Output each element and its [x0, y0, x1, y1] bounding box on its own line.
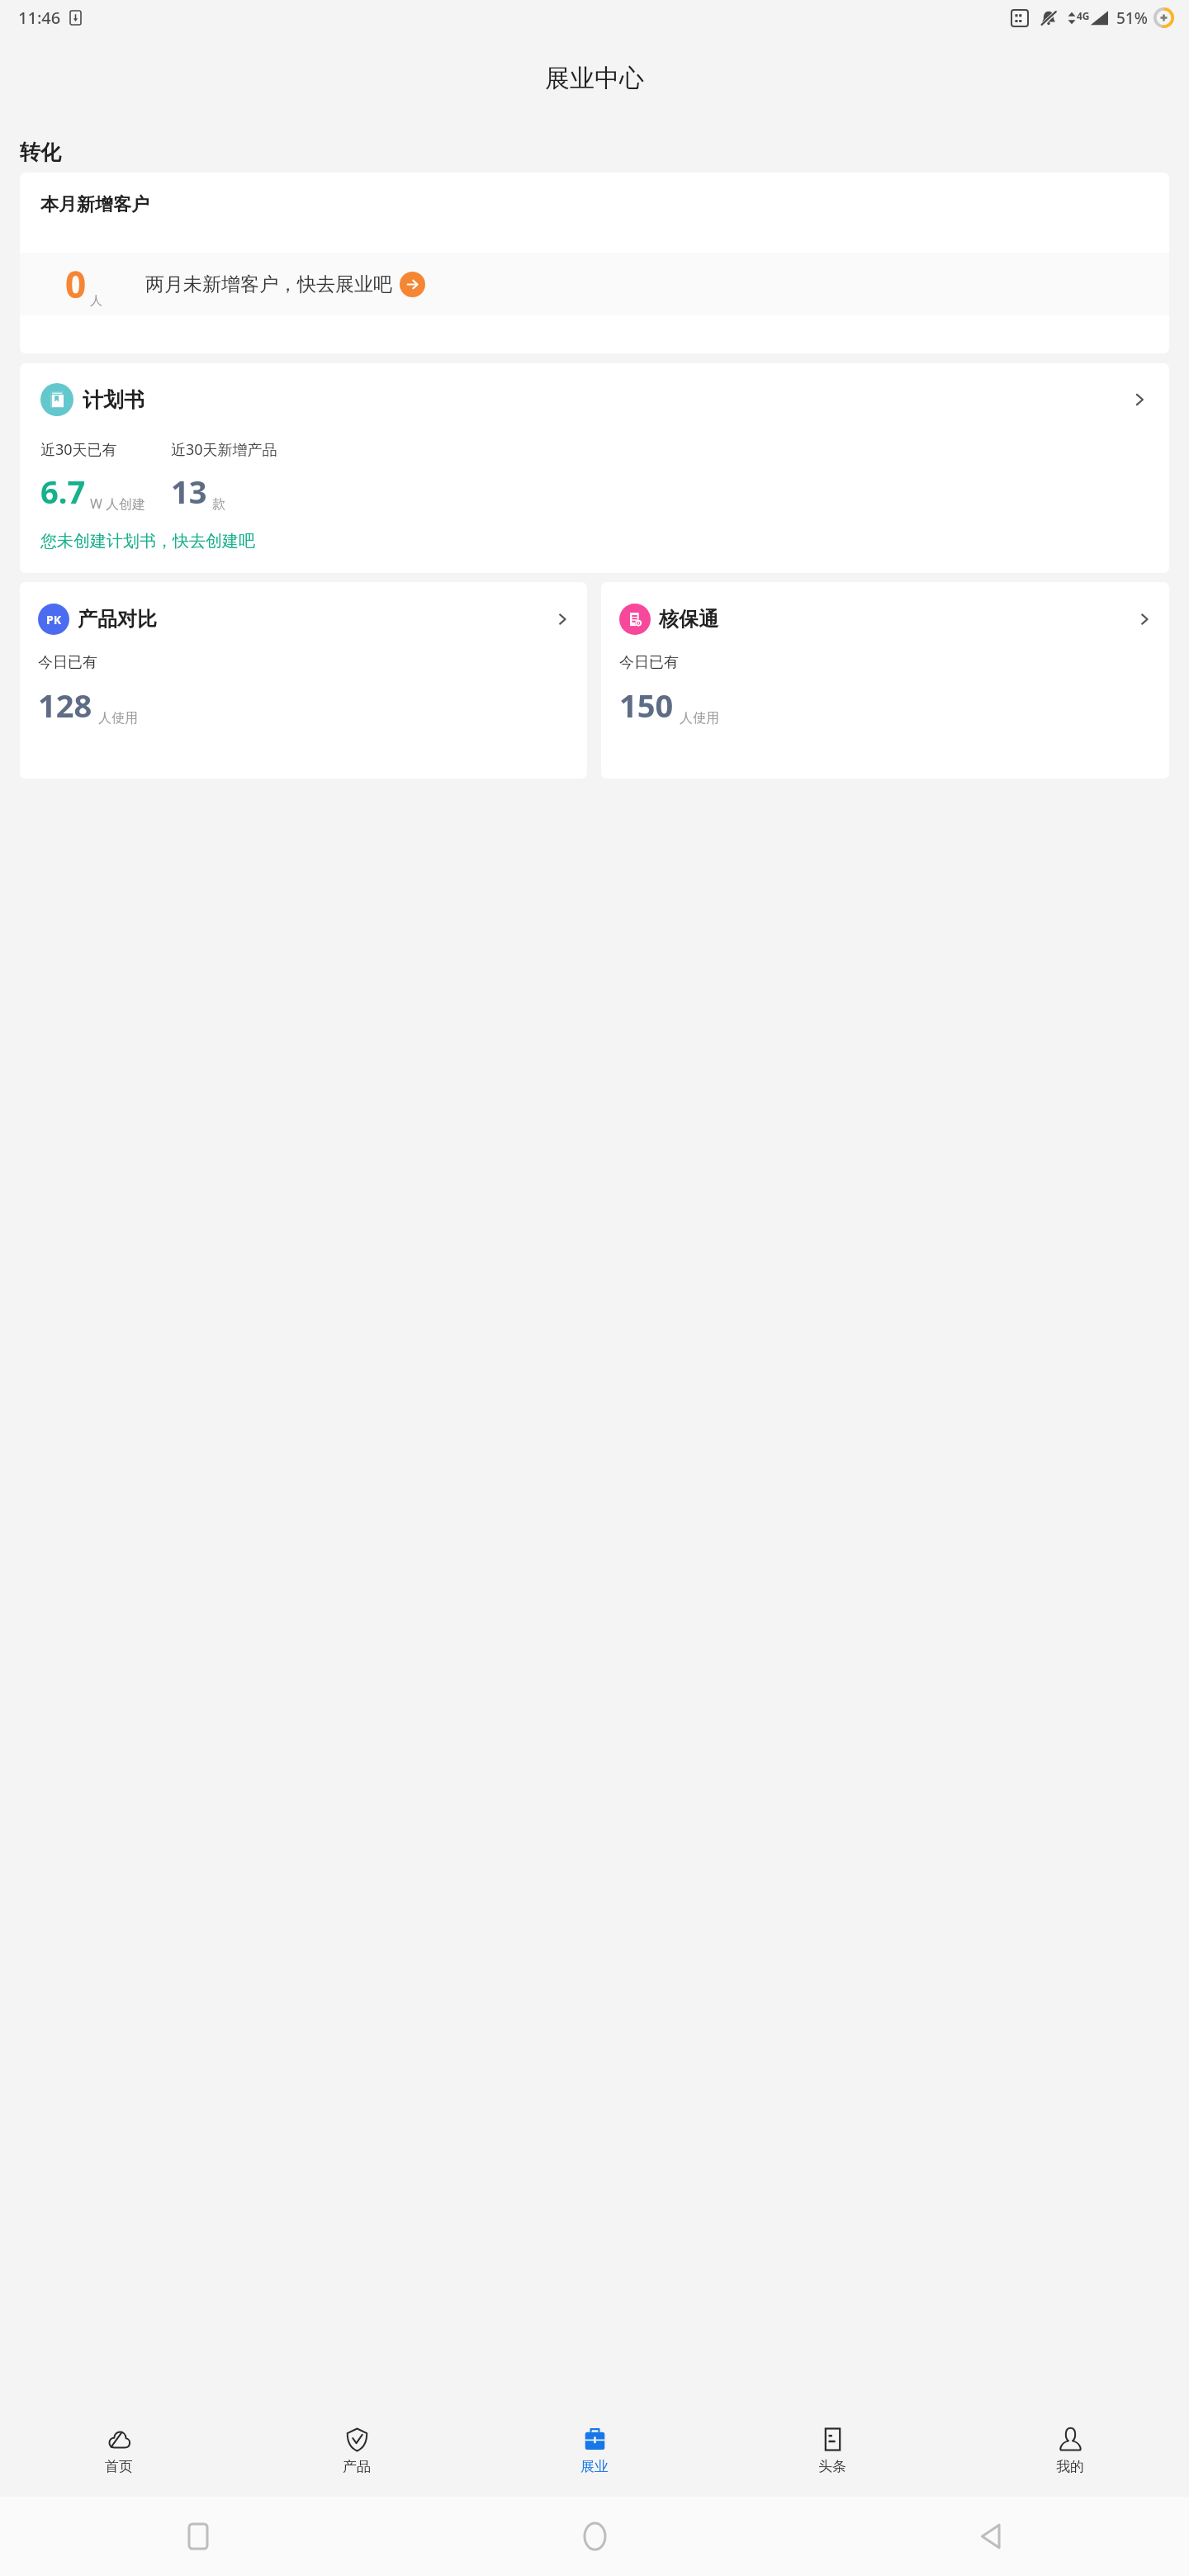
staticText: 产品对比	[78, 607, 157, 632]
button[interactable]: PK	[20, 582, 587, 779]
staticText: 150	[619, 684, 674, 727]
staticText: 展业中心	[545, 63, 644, 94]
button[interactable]: Home	[396, 2497, 793, 2576]
staticText: 本月新增客户	[40, 193, 149, 216]
staticText: 13	[171, 470, 207, 513]
staticText: W 人创建	[90, 495, 146, 513]
button[interactable]: Back	[793, 2497, 1189, 2576]
staticText: 近30天已有	[40, 439, 117, 460]
staticText: 0	[65, 259, 87, 309]
button[interactable]: Recents	[0, 2497, 396, 2576]
staticText: 4G	[1077, 9, 1090, 22]
button[interactable]: 核保通	[601, 582, 1169, 779]
staticText: 人使用	[98, 710, 138, 727]
staticText: 首页	[105, 2458, 133, 2475]
button[interactable]: 展业	[476, 2404, 713, 2497]
staticText: 转化	[20, 140, 61, 165]
staticText: 产品	[343, 2458, 371, 2475]
staticText: 128	[38, 684, 92, 727]
button[interactable]: 去展业	[400, 272, 425, 297]
staticText: 头条	[818, 2458, 846, 2475]
button[interactable]: 本月新增客户	[20, 173, 1169, 353]
staticText: 今日已有	[619, 653, 679, 672]
staticText: PK	[46, 612, 61, 627]
staticText: 款	[212, 496, 225, 513]
staticText: 我的	[1056, 2458, 1084, 2475]
staticText: 51%	[1116, 7, 1148, 29]
button[interactable]: 首页	[0, 2404, 238, 2497]
staticText: 两月未新增客户，快去展业吧	[145, 272, 392, 296]
staticText: 您未创建计划书，快去创建吧	[40, 531, 255, 552]
staticText: 核保通	[659, 607, 718, 632]
staticText: 计划书	[83, 387, 144, 413]
button[interactable]: 头条	[713, 2404, 951, 2497]
staticText: 展业	[580, 2458, 609, 2475]
staticText: 11:46	[18, 7, 61, 29]
staticText: 人	[90, 293, 102, 309]
button[interactable]: 产品	[238, 2404, 476, 2497]
staticText: 6.7	[40, 470, 86, 513]
staticText: 近30天新增产品	[171, 439, 277, 460]
staticText: 人使用	[680, 710, 719, 727]
button[interactable]: 我的	[951, 2404, 1189, 2497]
staticText: 今日已有	[38, 653, 97, 672]
button[interactable]: 计划书	[20, 363, 1169, 573]
